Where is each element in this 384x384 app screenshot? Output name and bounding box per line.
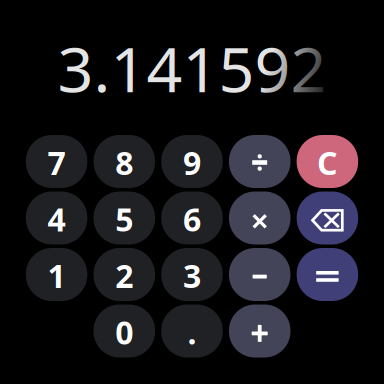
staticText: 7: [48, 141, 66, 184]
staticText: 5: [115, 198, 133, 240]
button[interactable]: Equals: [297, 248, 358, 301]
button[interactable]: 2: [93, 248, 155, 301]
staticText: 3.141592: [57, 26, 326, 110]
button[interactable]: C: [297, 135, 358, 188]
button[interactable]: Multiply: [229, 191, 290, 244]
staticText: 3: [183, 254, 201, 297]
staticText: 2: [115, 254, 133, 297]
button[interactable]: 1: [26, 248, 87, 301]
button[interactable]: 4: [26, 191, 87, 244]
button[interactable]: Subtract: [229, 248, 290, 301]
staticText: 8: [115, 141, 133, 184]
staticText: .: [187, 311, 196, 353]
button[interactable]: 7: [26, 135, 87, 188]
staticText: 6: [183, 198, 201, 240]
button[interactable]: .: [161, 304, 223, 357]
button[interactable]: Add: [229, 304, 290, 357]
staticText: 9: [183, 141, 201, 184]
staticText: 0: [115, 311, 133, 353]
button[interactable]: 8: [93, 135, 155, 188]
button[interactable]: Divide: [229, 135, 290, 188]
button[interactable]: 0: [93, 304, 155, 357]
button[interactable]: 6: [161, 191, 223, 244]
button[interactable]: 5: [93, 191, 155, 244]
button[interactable]: Delete: [297, 191, 358, 244]
staticText: 4: [48, 198, 66, 240]
button[interactable]: 3: [161, 248, 223, 301]
staticText: 1: [48, 254, 66, 297]
button[interactable]: 9: [161, 135, 223, 188]
staticText: C: [317, 141, 338, 184]
